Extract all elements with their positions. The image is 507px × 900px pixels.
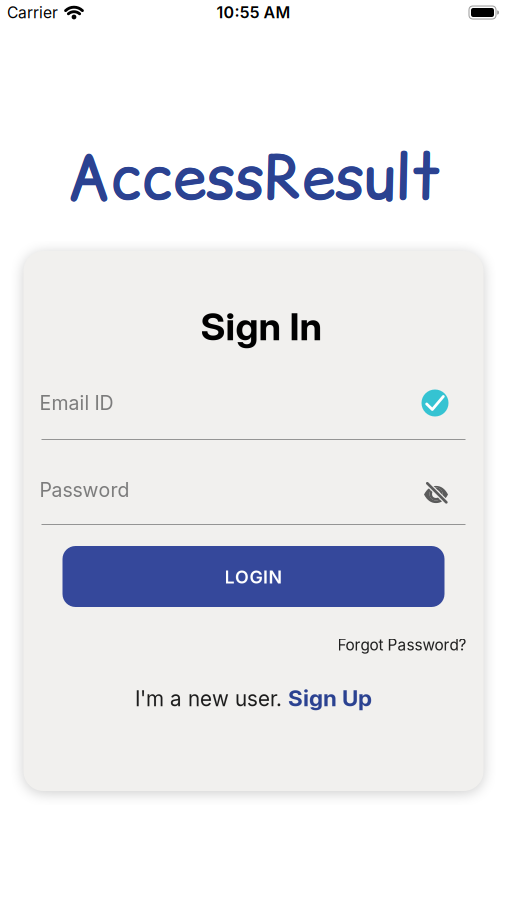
- button[interactable]: Forgot Password?: [337, 636, 466, 654]
- staticText: I'm a new user.: [135, 686, 288, 711]
- button[interactable]: LOGIN: [62, 546, 444, 607]
- staticText: Email ID: [39, 391, 113, 415]
- staticText: Carrier: [7, 3, 58, 22]
- button[interactable]: Sign Up: [288, 684, 372, 711]
- button[interactable]: Show password: [423, 477, 465, 502]
- staticText: Sign In: [200, 303, 322, 349]
- staticText: LOGIN: [224, 566, 282, 588]
- staticText: Sign Up: [288, 684, 372, 711]
- staticText: AccessResult: [67, 135, 440, 220]
- staticText: AccessResult: [67, 135, 440, 219]
- staticText: Password: [39, 478, 129, 502]
- staticText: Forgot Password?: [337, 636, 466, 654]
- staticText: AccessResult: [66, 135, 439, 219]
- staticText: 10:55 AM: [216, 3, 290, 22]
